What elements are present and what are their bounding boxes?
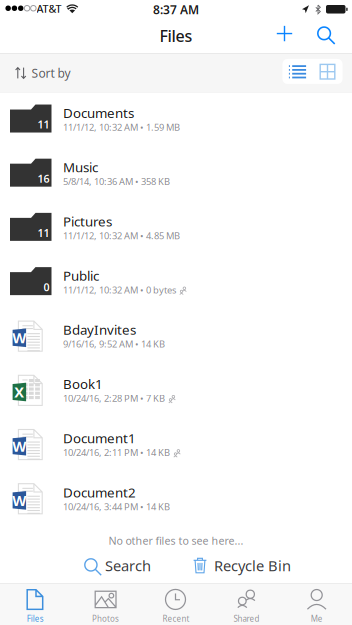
staticText: 16 [37, 171, 49, 186]
staticText: Search [105, 556, 151, 575]
staticText: Files [27, 613, 44, 624]
button[interactable]: 0 [0, 255, 352, 309]
staticText: Document2 [63, 483, 136, 501]
staticText: 10/24/16, 2:11 PM • 14 KB [63, 446, 170, 459]
button[interactable]: 11 [0, 201, 352, 255]
staticText: BdayInvites [63, 321, 136, 338]
button[interactable]: X [0, 363, 352, 418]
button[interactable]: Files [0, 582, 70, 625]
staticText: X [14, 382, 24, 402]
button[interactable]: Add [262, 17, 306, 50]
staticText: Recent [162, 613, 189, 624]
staticText: 11 [37, 117, 49, 131]
button[interactable]: W [0, 418, 352, 472]
staticText: No other files to see here... [108, 533, 243, 548]
staticText: Recycle Bin [214, 556, 291, 575]
staticText: AT&T [36, 2, 61, 16]
staticText: W [12, 328, 26, 347]
staticText: 5/8/14, 10:36 AM • 358 KB [63, 175, 170, 188]
staticText: 9/16/16, 9:52 AM • 14 KB [63, 338, 165, 350]
button[interactable]: Photos [70, 582, 141, 625]
button[interactable]: Sort by [0, 54, 82, 92]
button[interactable]: W [0, 309, 352, 363]
button[interactable]: Shared [211, 582, 282, 625]
staticText: Shared [233, 613, 259, 624]
staticText: Photos [92, 613, 119, 624]
staticText: 8:37 AM [153, 2, 199, 17]
staticText: 11 [37, 226, 49, 240]
button[interactable]: Recycle Bin [188, 550, 296, 580]
button[interactable]: Grid view [312, 59, 342, 84]
staticText: Sort by [31, 65, 70, 81]
button[interactable]: W [0, 472, 352, 526]
staticText: Pictures [63, 212, 112, 230]
staticText: Music [63, 158, 98, 176]
staticText: Documents [63, 104, 134, 122]
button[interactable]: Search [79, 550, 156, 580]
staticText: Public [63, 267, 99, 284]
staticText: 11/1/12, 10:32 AM • 1.59 MB [63, 121, 180, 133]
button[interactable]: 16 [0, 147, 352, 201]
button[interactable]: List view [282, 59, 312, 84]
staticText: W [12, 490, 26, 510]
staticText: 11/1/12, 10:32 AM • 4.85 MB [63, 229, 180, 242]
staticText: 0 [43, 280, 49, 294]
button[interactable]: Me [282, 582, 352, 625]
button[interactable]: Recent [141, 582, 211, 625]
button[interactable]: 11 [0, 92, 352, 147]
staticText: Files [159, 25, 192, 46]
button[interactable]: Search [304, 19, 348, 52]
staticText: 10/24/16, 2:28 PM • 7 KB [63, 392, 165, 404]
staticText: 11/1/12, 10:32 AM • 0 bytes [63, 284, 176, 296]
staticText: Me [311, 613, 323, 624]
staticText: Document1 [63, 429, 136, 447]
staticText: W [12, 436, 26, 456]
staticText: Book1 [63, 375, 103, 393]
staticText: 10/24/16, 3:44 PM • 14 KB [63, 500, 170, 513]
